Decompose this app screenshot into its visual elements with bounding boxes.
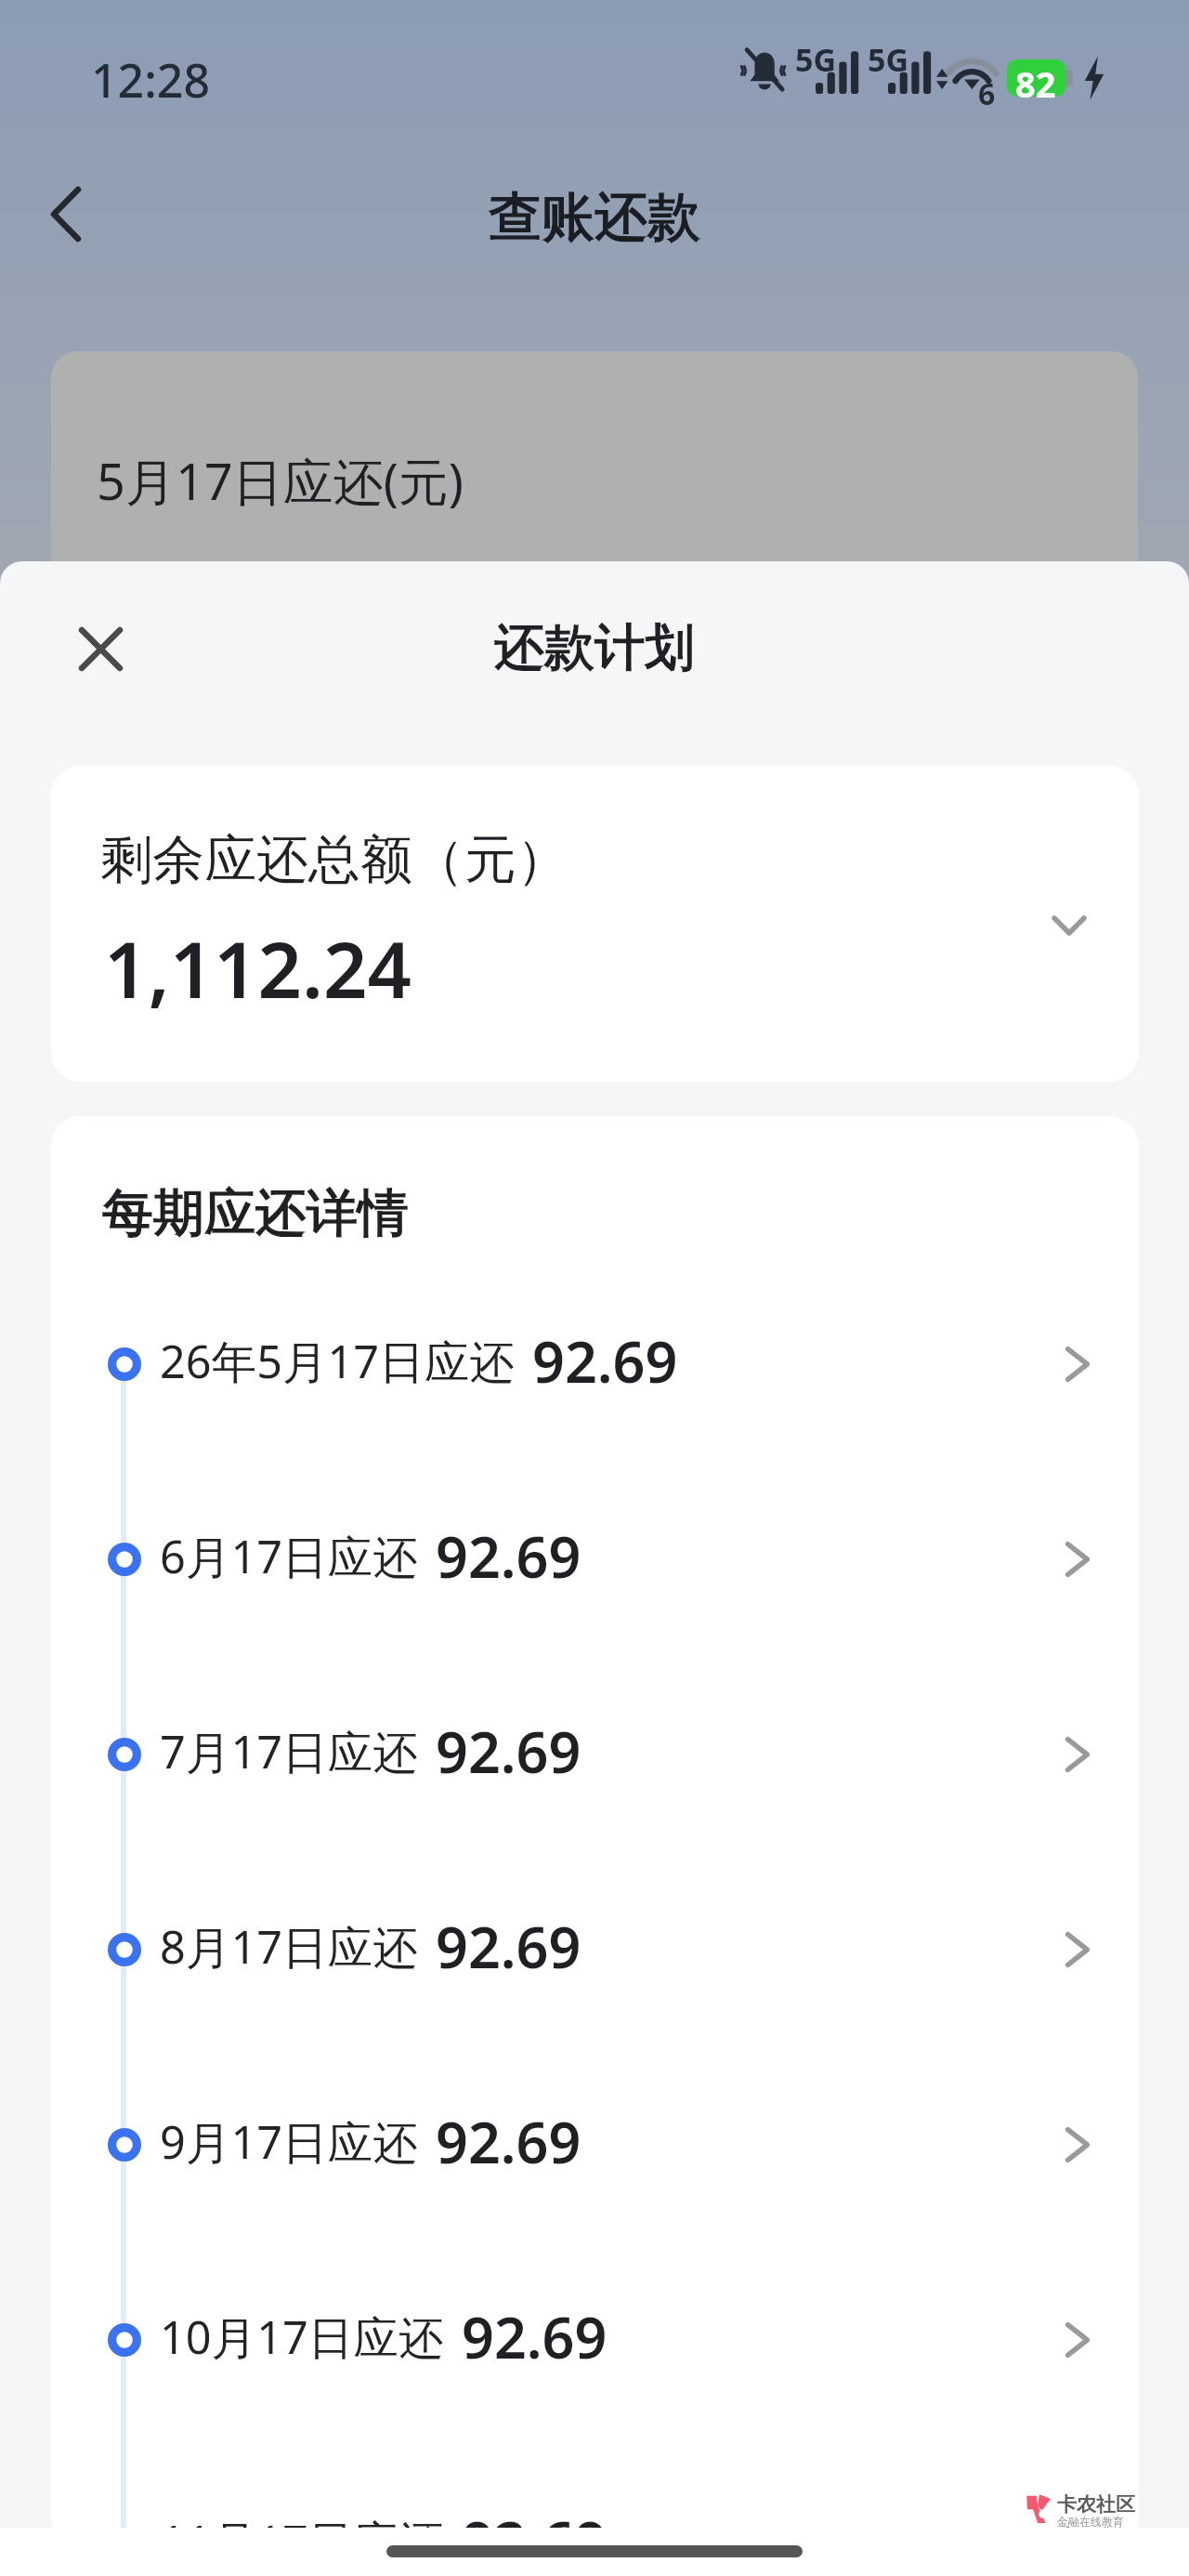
staticText: 8月17日应还 <box>160 1915 418 1977</box>
staticText: 卡农社区 <box>1057 2492 1135 2517</box>
staticText: 5月17日应还(元) <box>97 446 464 515</box>
staticText: 26年5月17日应还 <box>160 1330 515 1391</box>
staticText: 每期应还详情 <box>102 1181 409 1245</box>
staticText: 12:28 <box>91 48 210 112</box>
button[interactable]: 关闭 <box>56 604 145 693</box>
staticText: 还款计划 <box>494 616 695 679</box>
staticText: 11月17日应还 <box>160 2510 444 2528</box>
button[interactable]: 9月17日应还 <box>51 2070 1139 2219</box>
staticText: 92.69 <box>436 1908 581 1985</box>
button[interactable]: 7月17日应还 <box>51 1680 1139 1829</box>
button[interactable]: 6月17日应还 <box>51 1485 1139 1634</box>
staticText: 还款计划 <box>494 616 695 679</box>
staticText: 金融在线教育 <box>1057 2515 1124 2529</box>
button[interactable]: 10月17日应还 <box>51 2266 1139 2414</box>
staticText: 92.69 <box>436 1713 581 1790</box>
staticText: 10月17日应还 <box>160 2306 444 2367</box>
button[interactable]: 展开 <box>1026 883 1112 968</box>
button[interactable]: 11月17日应还 <box>51 2470 1139 2528</box>
button[interactable]: 26年5月17日应还 <box>51 1290 1139 1439</box>
staticText: 6月17日应还 <box>160 1525 418 1586</box>
staticText: 6 <box>978 73 996 114</box>
staticText: 82 <box>1015 59 1056 108</box>
staticText: 9月17日应还 <box>160 2110 418 2172</box>
staticText: 92.69 <box>436 1518 581 1595</box>
staticText: 1,112.24 <box>104 915 412 1020</box>
staticText: 查账还款 <box>489 184 700 251</box>
staticText: 剩余应还总额（元） <box>100 827 568 893</box>
button[interactable]: 返回 <box>20 167 112 260</box>
staticText: 5G <box>868 38 909 81</box>
staticText: 92.69 <box>462 2503 608 2528</box>
button[interactable]: 8月17日应还 <box>51 1875 1139 2024</box>
staticText: 查账还款 <box>489 184 700 251</box>
staticText: 92.69 <box>532 1322 678 1400</box>
staticText: 92.69 <box>436 2103 581 2180</box>
staticText: 5G <box>795 38 837 81</box>
staticText: 92.69 <box>462 2298 608 2375</box>
staticText: 7月17日应还 <box>160 1720 418 1781</box>
staticText: 每期应还详情 <box>102 1181 409 1245</box>
